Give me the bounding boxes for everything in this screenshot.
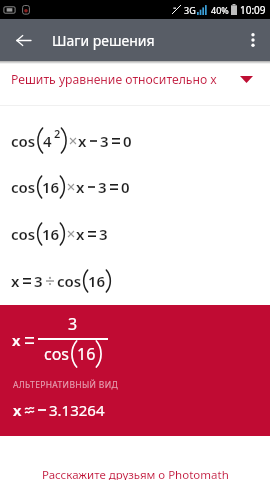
staticText: 16 bbox=[88, 271, 106, 291]
staticText: 4 bbox=[43, 131, 52, 151]
staticText: x bbox=[12, 330, 21, 350]
staticText: 3 bbox=[98, 177, 107, 197]
staticText: Шаги решения bbox=[52, 31, 155, 50]
staticText: 10:09 bbox=[240, 3, 266, 17]
staticText: 16 bbox=[42, 177, 60, 197]
button[interactable]: More options bbox=[236, 19, 270, 61]
staticText: 3 bbox=[34, 271, 43, 291]
staticText: x bbox=[11, 271, 20, 291]
staticText: cos bbox=[11, 177, 36, 197]
staticText: cos bbox=[11, 131, 36, 151]
staticText: 3 bbox=[68, 313, 78, 335]
staticText: 3 bbox=[100, 131, 109, 151]
staticText: 3.13264 bbox=[49, 400, 105, 420]
button[interactable]: Back bbox=[0, 19, 46, 61]
staticText: x bbox=[76, 177, 85, 197]
button[interactable]: Расскажите друзьям о Photomath bbox=[0, 467, 270, 480]
staticText: 3 bbox=[99, 224, 108, 244]
staticText: 0 bbox=[123, 131, 132, 151]
staticText: 0 bbox=[121, 177, 130, 197]
staticText: cos bbox=[57, 271, 82, 291]
staticText: 16 bbox=[42, 224, 60, 244]
staticText: 40% bbox=[211, 4, 229, 16]
staticText: 2 bbox=[54, 126, 61, 141]
staticText: 16 bbox=[77, 343, 96, 365]
staticText: АЛЬТЕРНАТИВНЫЙ ВИД bbox=[13, 379, 119, 391]
staticText: cos bbox=[44, 343, 70, 365]
staticText: x bbox=[76, 224, 85, 244]
staticText: x bbox=[78, 131, 87, 151]
staticText: Решить уравнение относительно x bbox=[11, 71, 217, 88]
staticText: cos bbox=[11, 224, 36, 244]
staticText: 3G bbox=[184, 4, 196, 16]
staticText: x bbox=[13, 400, 22, 420]
staticText: Расскажите друзьям о Photomath bbox=[42, 467, 229, 480]
button[interactable]: Решить уравнение относительно x bbox=[0, 64, 270, 105]
